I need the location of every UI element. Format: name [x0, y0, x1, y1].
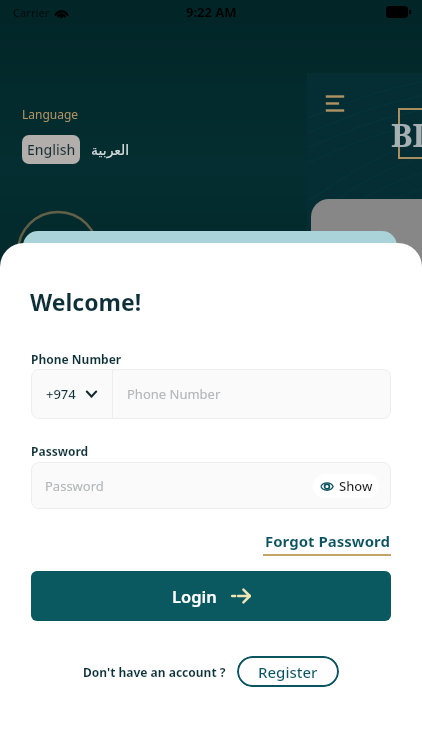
staticText: Show — [339, 477, 373, 495]
staticText: العربية — [91, 142, 130, 158]
staticText: Forgot Password — [265, 531, 390, 551]
staticText: Welcome! — [30, 286, 142, 317]
staticText: Register — [258, 662, 318, 682]
button[interactable]: Forgot Password — [263, 531, 391, 556]
other: Show password — [320, 481, 334, 492]
staticText: G — [384, 238, 403, 273]
button[interactable]: العربية — [80, 135, 140, 164]
staticText: Phone Number — [31, 351, 122, 367]
button[interactable]: Show password — [313, 474, 379, 498]
other: Menu — [327, 95, 343, 112]
staticText: Language — [22, 106, 79, 122]
staticText: +974 — [46, 385, 76, 403]
staticText: Password — [45, 477, 313, 495]
button[interactable]: Register — [237, 656, 339, 687]
button[interactable]: +974 — [31, 369, 112, 419]
staticText: 9:22 AM — [186, 3, 237, 21]
staticText: Carrier — [13, 5, 50, 20]
staticText: Phone Number — [127, 385, 221, 403]
staticText: Don't have an account ? — [83, 664, 226, 680]
button[interactable]: Login — [31, 571, 391, 621]
button[interactable]: English — [22, 135, 80, 164]
staticText: Password — [31, 443, 89, 459]
staticText: Login — [172, 585, 217, 607]
staticText: BD — [391, 113, 422, 157]
staticText: English — [27, 140, 76, 159]
